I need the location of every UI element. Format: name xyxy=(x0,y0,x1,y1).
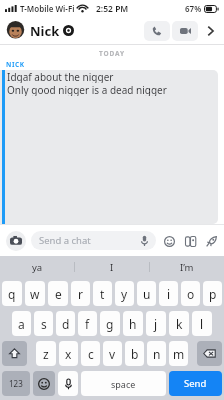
staticText: h xyxy=(129,316,137,332)
button[interactable]: Send xyxy=(169,371,222,396)
staticText: Nick xyxy=(30,22,60,40)
button[interactable]: Idgaf about the nigger xyxy=(0,70,218,224)
staticText: w xyxy=(30,286,40,302)
button[interactable]: space xyxy=(81,371,166,396)
staticText: a xyxy=(18,316,25,332)
staticText: Idgaf about the nigger xyxy=(7,70,114,83)
button[interactable]: m xyxy=(169,341,188,366)
staticText: k xyxy=(176,316,183,332)
button[interactable]: r xyxy=(71,281,90,306)
staticText: T-Mobile Wi-Fi xyxy=(20,3,75,14)
staticText: space xyxy=(111,378,136,390)
button[interactable]: d xyxy=(56,311,75,336)
staticText: ya xyxy=(32,261,43,274)
button[interactable]: Backspace xyxy=(197,341,222,366)
button[interactable]: c xyxy=(81,341,100,366)
staticText: q xyxy=(8,286,16,302)
button[interactable]: l xyxy=(192,311,212,336)
button[interactable]: Rocket xyxy=(204,234,218,248)
button[interactable]: t xyxy=(93,281,112,306)
staticText: u xyxy=(143,286,151,302)
button[interactable]: b xyxy=(125,341,144,366)
button[interactable]: h xyxy=(123,311,143,336)
button[interactable]: I’m xyxy=(150,256,224,278)
staticText: l xyxy=(200,316,204,332)
button[interactable]: y xyxy=(115,281,134,306)
button[interactable]: Emoji xyxy=(33,371,55,396)
button[interactable]: More xyxy=(202,21,218,41)
staticText: j xyxy=(154,316,158,332)
staticText: y xyxy=(121,286,128,302)
button[interactable]: Call xyxy=(144,21,170,41)
button[interactable]: Video call xyxy=(172,21,198,41)
staticText: TODAY xyxy=(99,49,126,58)
button[interactable]: f xyxy=(78,311,97,336)
staticText: g xyxy=(106,316,114,332)
button[interactable]: k xyxy=(169,311,189,336)
button[interactable]: s xyxy=(34,311,53,336)
staticText: p xyxy=(209,286,217,302)
button[interactable]: Bitmoji xyxy=(183,234,197,248)
button[interactable]: Shift xyxy=(2,341,27,366)
staticText: f xyxy=(85,316,90,332)
button[interactable]: j xyxy=(146,311,166,336)
staticText: e xyxy=(55,286,62,302)
staticText: 2:52 PM xyxy=(96,3,129,15)
button[interactable]: o xyxy=(181,281,200,306)
button[interactable]: Camera xyxy=(6,231,26,251)
button[interactable]: w xyxy=(25,281,45,306)
button[interactable]: q xyxy=(2,281,22,306)
staticText: x xyxy=(65,346,72,362)
staticText: I xyxy=(110,261,114,274)
staticText: m xyxy=(173,346,185,362)
button[interactable]: ya xyxy=(0,256,74,278)
staticText: c xyxy=(88,346,94,362)
button[interactable]: p xyxy=(203,281,222,306)
button[interactable]: Stickers xyxy=(162,234,176,248)
staticText: NICK xyxy=(6,60,25,69)
button[interactable]: x xyxy=(59,341,78,366)
staticText: i xyxy=(167,286,171,302)
button[interactable]: a xyxy=(12,311,31,336)
staticText: b xyxy=(131,346,139,362)
button[interactable]: g xyxy=(100,311,120,336)
button[interactable]: v xyxy=(103,341,122,366)
button[interactable]: e xyxy=(48,281,68,306)
button[interactable]: 123 xyxy=(2,371,30,396)
staticText: n xyxy=(153,346,161,362)
staticText: t xyxy=(100,286,105,302)
staticText: d xyxy=(62,316,70,332)
button[interactable]: i xyxy=(159,281,178,306)
button[interactable]: z xyxy=(36,341,56,366)
staticText: r xyxy=(78,286,83,302)
staticText: Send xyxy=(184,377,207,390)
button[interactable]: Dictate xyxy=(58,371,78,396)
button[interactable]: n xyxy=(147,341,166,366)
staticText: I’m xyxy=(180,261,194,274)
staticText: Only good nigger is a dead nigger xyxy=(7,83,167,96)
staticText: Send a chat xyxy=(39,234,91,247)
staticText: o xyxy=(187,286,195,302)
staticText: s xyxy=(41,316,47,332)
staticText: v xyxy=(109,346,116,362)
button[interactable]: I xyxy=(75,256,149,278)
staticText: 123 xyxy=(9,378,23,389)
staticText: 67% xyxy=(185,3,202,14)
staticText: z xyxy=(43,346,49,362)
button[interactable]: Send a chat xyxy=(31,231,156,250)
button[interactable]: u xyxy=(137,281,156,306)
